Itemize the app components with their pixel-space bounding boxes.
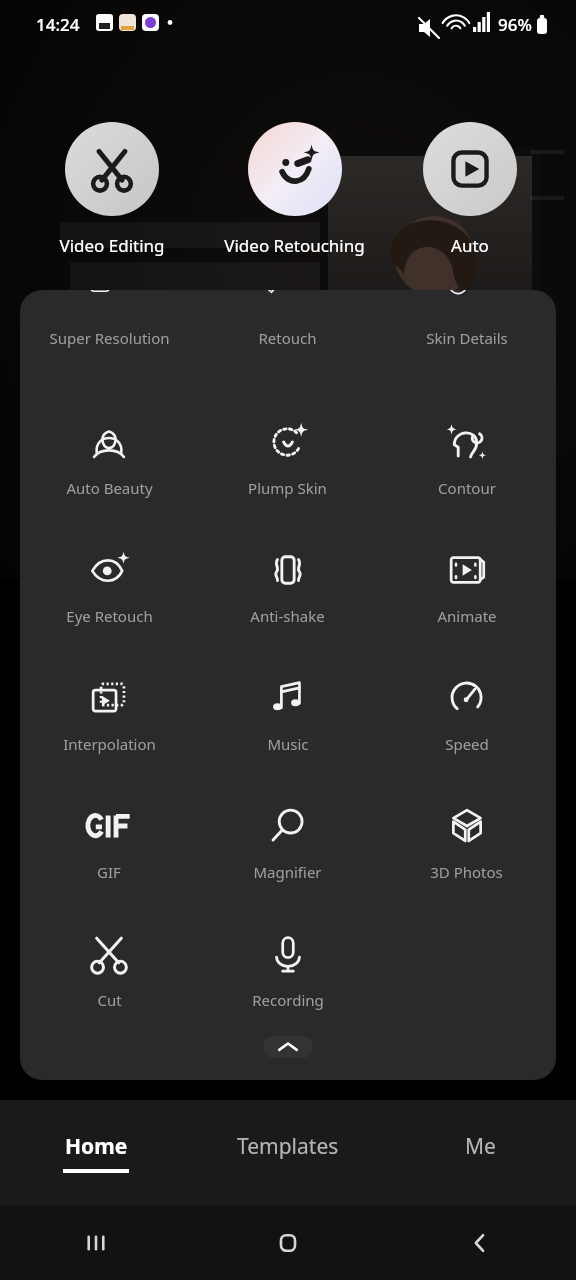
staticText: 14:24	[36, 13, 80, 36]
button[interactable]: Auto Beauty	[20, 396, 198, 524]
button[interactable]: Back	[384, 1205, 576, 1280]
staticText: Recording	[252, 990, 324, 1010]
staticText: Animate	[437, 606, 497, 626]
staticText: Auto	[451, 234, 489, 257]
staticText: Me	[465, 1132, 496, 1161]
button[interactable]: Super Resolution	[20, 290, 198, 396]
staticText: Cut	[97, 990, 122, 1010]
button[interactable]: Interpolation	[20, 652, 198, 780]
button[interactable]: Cut	[20, 908, 198, 1036]
staticText: Contour	[438, 478, 496, 498]
button[interactable]: Home	[0, 1100, 192, 1205]
staticText: Anti-shake	[250, 606, 325, 626]
staticText: Templates	[237, 1132, 339, 1161]
staticText: Speed	[445, 734, 489, 754]
staticText: Super Resolution	[49, 328, 170, 348]
button[interactable]: Recents	[0, 1205, 192, 1280]
button[interactable]: Me	[384, 1100, 576, 1205]
staticText: Eye Retouch	[66, 606, 153, 626]
button[interactable]: 3D Photos	[377, 780, 556, 908]
staticText: Plump Skin	[248, 478, 327, 498]
staticText: Video Editing	[59, 234, 165, 257]
staticText: Retouch	[258, 328, 317, 348]
staticText: Home	[65, 1132, 128, 1161]
button[interactable]: Skin Details	[377, 290, 556, 396]
staticText: Skin Details	[426, 328, 508, 348]
staticText: 96%	[498, 13, 532, 36]
button[interactable]: Magnifier	[198, 780, 377, 908]
button[interactable]: Speed	[377, 652, 556, 780]
button[interactable]: Eye Retouch	[20, 524, 198, 652]
button[interactable]: Music	[198, 652, 377, 780]
staticText: Video Retouching	[224, 234, 365, 257]
button[interactable]: Animate	[377, 524, 556, 652]
button[interactable]: Anti-shake	[198, 524, 377, 652]
staticText: 3D Photos	[430, 862, 503, 882]
button[interactable]: Contour	[377, 396, 556, 524]
button[interactable]: Home	[192, 1205, 384, 1280]
staticText: Magnifier	[253, 862, 322, 882]
staticText: Interpolation	[63, 734, 156, 754]
button[interactable]	[248, 122, 342, 216]
button[interactable]: Recording	[198, 908, 377, 1036]
staticText: Auto Beauty	[66, 478, 153, 498]
button[interactable]: GIF	[20, 780, 198, 908]
button[interactable]	[423, 122, 517, 216]
button[interactable]	[65, 122, 159, 216]
button[interactable]: Retouch	[198, 290, 377, 396]
staticText: GIF	[97, 862, 121, 882]
button[interactable]: Templates	[192, 1100, 384, 1205]
staticText: Music	[267, 734, 309, 754]
button[interactable]: Collapse	[263, 1036, 313, 1058]
button[interactable]: Plump Skin	[198, 396, 377, 524]
